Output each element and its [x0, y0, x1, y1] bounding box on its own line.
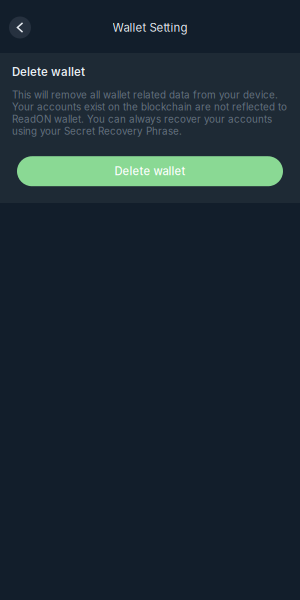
staticText: Delete wallet: [12, 65, 85, 79]
staticText: Delete wallet: [114, 164, 185, 178]
button[interactable]: Back: [9, 16, 31, 38]
staticText: This will remove all wallet related data…: [12, 89, 287, 137]
button[interactable]: Delete wallet: [17, 156, 283, 186]
staticText: Wallet Setting: [112, 21, 187, 34]
